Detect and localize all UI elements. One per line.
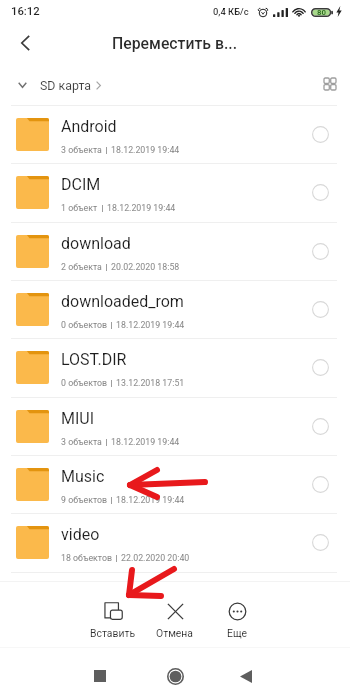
button[interactable]: Recents	[80, 656, 120, 696]
staticText: Отмена	[156, 627, 194, 639]
staticText: 18 объектов	[61, 553, 112, 563]
staticText: MIUI	[61, 409, 95, 428]
staticText: 2 объекта	[61, 262, 102, 272]
button[interactable]: video	[0, 513, 350, 571]
staticText: DCIM	[61, 175, 101, 194]
staticText: 18.12.2019 19:44	[116, 495, 185, 505]
staticText: SD карта	[40, 78, 92, 93]
button[interactable]: LOST.DIR	[0, 338, 350, 396]
staticText: 9 объектов	[61, 495, 107, 505]
button[interactable]: Home	[155, 656, 195, 696]
staticText: 18.12.2019 19:44	[116, 320, 185, 330]
button[interactable]: Back	[3, 21, 47, 65]
staticText: 20.02.2020 18:58	[111, 262, 180, 272]
button[interactable]: Вставить	[82, 592, 144, 645]
button[interactable]: SD карта	[18, 70, 101, 100]
staticText: Music	[61, 467, 105, 486]
staticText: 13.12.2018 17:51	[116, 378, 185, 388]
button[interactable]: Music	[0, 455, 350, 513]
staticText: 22.02.2020 20:40	[121, 553, 190, 563]
staticText: Переместить в...	[112, 34, 238, 53]
button[interactable]: DCIM	[0, 163, 350, 221]
button[interactable]: Android	[0, 105, 350, 163]
button[interactable]: Back	[226, 656, 266, 696]
staticText: 18.12.2019 19:44	[107, 203, 176, 213]
button[interactable]: Еще	[206, 592, 268, 645]
button[interactable]: MIUI	[0, 397, 350, 455]
staticText: 0,4 КБ/c	[213, 6, 249, 17]
staticText: 80	[317, 8, 326, 17]
staticText: Вставить	[90, 627, 136, 639]
staticText: 18.12.2019 19:44	[111, 145, 180, 155]
staticText: 16:12	[11, 5, 40, 18]
staticText: 0 объектов	[61, 320, 107, 330]
staticText: video	[61, 525, 100, 544]
button[interactable]: Отмена	[144, 592, 206, 645]
staticText: download	[61, 234, 131, 253]
staticText: 3 объекта	[61, 145, 102, 155]
staticText: 3 объекта	[61, 437, 102, 447]
staticText: 18.12.2019 19:44	[111, 437, 180, 447]
staticText: Еще	[227, 627, 248, 639]
button[interactable]: downloaded_rom	[0, 280, 350, 338]
staticText: LOST.DIR	[61, 350, 127, 369]
staticText: 1 объект	[61, 203, 98, 213]
staticText: Android	[61, 117, 117, 136]
staticText: downloaded_rom	[61, 292, 184, 311]
staticText: 0 объектов	[61, 378, 107, 388]
button[interactable]: Grid view	[314, 68, 346, 100]
button[interactable]: download	[0, 222, 350, 280]
